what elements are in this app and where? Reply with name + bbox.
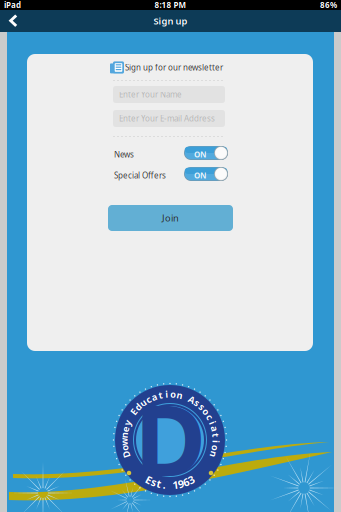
staticText: News bbox=[114, 149, 134, 160]
staticText: 3 bbox=[188, 473, 194, 487]
staticText: E bbox=[131, 405, 136, 418]
staticText: y bbox=[125, 417, 130, 429]
staticText: c bbox=[207, 411, 212, 423]
staticText: D bbox=[134, 372, 206, 503]
staticText: D bbox=[123, 448, 130, 460]
button[interactable]: Back bbox=[0, 10, 32, 32]
staticText: e bbox=[122, 423, 128, 435]
staticText: 6 bbox=[183, 475, 189, 489]
staticText bbox=[129, 411, 131, 423]
button[interactable]: News on bbox=[184, 146, 228, 160]
staticText: Enter Your Name bbox=[119, 89, 182, 100]
staticText: 86% bbox=[320, 0, 337, 10]
staticText: u bbox=[140, 397, 146, 409]
staticText: E bbox=[146, 473, 152, 487]
staticText: i bbox=[165, 388, 168, 400]
staticText: o bbox=[122, 442, 128, 454]
staticText: o bbox=[170, 388, 176, 400]
staticText: 9 bbox=[178, 477, 184, 491]
staticText: s bbox=[194, 397, 199, 409]
staticText: s bbox=[151, 475, 156, 489]
staticText: Join bbox=[162, 212, 179, 224]
staticText: d bbox=[135, 401, 141, 413]
staticText: n bbox=[211, 448, 217, 460]
staticText: t bbox=[157, 477, 162, 491]
button[interactable]: Special offers on bbox=[184, 167, 228, 181]
staticText: 8:18 PM bbox=[154, 0, 186, 10]
staticText: Special Offers bbox=[114, 170, 166, 181]
staticText: iPad bbox=[4, 0, 21, 10]
staticText: t bbox=[158, 389, 162, 401]
staticText: A bbox=[189, 393, 195, 406]
staticText: Sign up bbox=[153, 15, 187, 27]
button[interactable]: Enter Your Name bbox=[113, 86, 225, 103]
button[interactable]: Enter Your E-mail Address bbox=[113, 110, 225, 127]
button[interactable]: Join bbox=[108, 205, 233, 231]
staticText: n bbox=[121, 429, 127, 441]
staticText: c bbox=[146, 393, 151, 406]
staticText: Sign up for our newsletter bbox=[125, 62, 223, 73]
staticText: i bbox=[211, 417, 214, 429]
staticText: n bbox=[177, 389, 183, 401]
staticText: o bbox=[203, 405, 209, 418]
staticText: i bbox=[214, 435, 217, 448]
staticText: ON bbox=[194, 149, 207, 160]
staticText: t bbox=[214, 429, 218, 441]
staticText: Enter Your E-mail Address bbox=[119, 113, 215, 124]
staticText: ON bbox=[194, 170, 207, 181]
staticText: w bbox=[120, 435, 128, 448]
staticText: s bbox=[199, 401, 204, 413]
staticText: . bbox=[163, 478, 166, 492]
staticText: a bbox=[212, 423, 218, 435]
staticText: o bbox=[212, 442, 218, 454]
staticText: 1 bbox=[172, 478, 178, 492]
staticText: a bbox=[151, 391, 157, 403]
